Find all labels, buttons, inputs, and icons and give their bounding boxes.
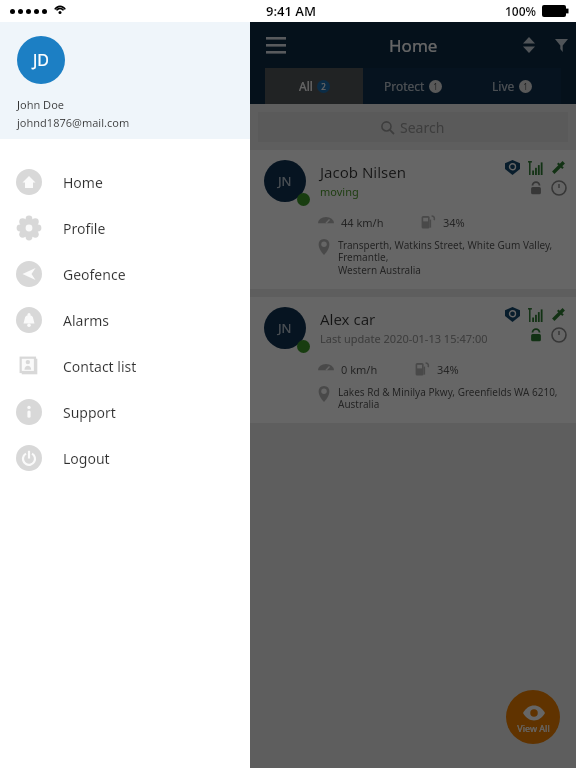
staticText: JN: [278, 319, 292, 337]
staticText: Support: [63, 403, 116, 422]
staticText: 1: [523, 81, 528, 92]
staticText: Geofence: [63, 265, 126, 284]
staticText: Alex car: [320, 309, 376, 329]
staticText: 0 km/h: [341, 362, 378, 377]
staticText: 2: [321, 81, 326, 92]
button[interactable]: Open navigation menu: [258, 27, 294, 63]
button[interactable]: Contact list: [0, 343, 250, 389]
button[interactable]: View All: [506, 690, 560, 744]
button[interactable]: Profile: [0, 205, 250, 251]
staticText: Alarms: [63, 311, 109, 330]
button[interactable]: Home: [0, 159, 250, 205]
staticText: Jacob Nilsen: [320, 162, 406, 182]
button[interactable]: JN: [250, 150, 576, 289]
staticText: 1: [433, 81, 438, 92]
staticText: 34%: [437, 362, 459, 377]
staticText: Home: [389, 34, 438, 57]
staticText: johnd1876@mail.com: [17, 115, 130, 130]
staticText: Transperth, Watkins Street, White Gum Va…: [338, 238, 566, 277]
staticText: Profile: [63, 219, 106, 238]
button[interactable]: Sort: [512, 28, 546, 62]
staticText: JN: [278, 172, 292, 190]
button[interactable]: Geofence: [0, 251, 250, 297]
button[interactable]: Support: [0, 389, 250, 435]
staticText: View All: [517, 722, 550, 734]
staticText: JD: [33, 49, 50, 71]
button[interactable]: Filter: [546, 30, 576, 60]
staticText: moving: [320, 184, 359, 199]
staticText: 44 km/h: [341, 215, 384, 230]
button[interactable]: All: [265, 68, 363, 104]
button[interactable]: Protect: [363, 68, 462, 104]
button[interactable]: Logout: [0, 435, 250, 481]
staticText: Logout: [63, 449, 110, 468]
button[interactable]: JD: [0, 22, 250, 139]
staticText: 34%: [443, 215, 465, 230]
staticText: Contact list: [63, 357, 137, 376]
staticText: Home: [63, 173, 103, 192]
staticText: John Doe: [17, 97, 65, 112]
staticText: Last update 2020-01-13 15:47:00: [320, 331, 488, 346]
staticText: 9:41 AM: [266, 2, 317, 20]
button[interactable]: Live: [462, 68, 561, 104]
button[interactable]: Search: [258, 112, 568, 142]
staticText: Lakes Rd & Minilya Pkwy, Greenfields WA …: [338, 385, 566, 411]
staticText: Live: [492, 78, 515, 94]
staticText: Search: [400, 118, 445, 137]
staticText: All: [299, 78, 313, 94]
button[interactable]: JN: [250, 297, 576, 423]
staticText: Protect: [384, 78, 425, 94]
button[interactable]: [250, 0, 576, 768]
button[interactable]: Alarms: [0, 297, 250, 343]
staticText: 100%: [505, 3, 537, 19]
